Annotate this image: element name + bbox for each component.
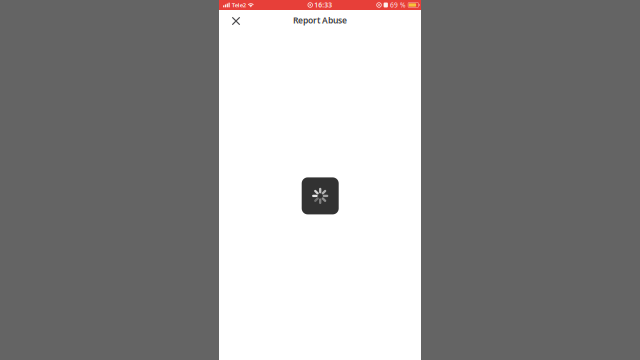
staticText: Report Abuse xyxy=(293,14,347,26)
staticText: Tele2 xyxy=(232,1,246,9)
button[interactable]: Close xyxy=(223,11,247,33)
staticText: 16:33 xyxy=(314,0,332,10)
staticText: 69 % xyxy=(390,0,406,10)
